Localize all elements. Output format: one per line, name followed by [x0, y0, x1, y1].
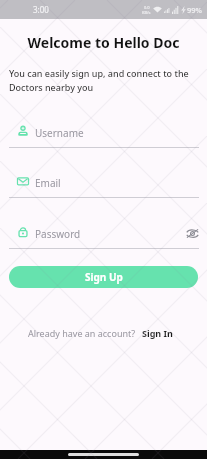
button[interactable]: Sign Up	[9, 266, 198, 288]
staticText: You can easily sign up, and connect to t…	[9, 67, 189, 93]
staticText: 0.0	[144, 5, 150, 10]
staticText: Welcome to Hello Doc	[0, 33, 207, 52]
other: Show password	[186, 228, 199, 239]
button[interactable]: Password	[9, 226, 199, 248]
staticText: Password	[35, 227, 81, 241]
button[interactable]: Username	[9, 125, 199, 147]
staticText: Sign In	[142, 327, 173, 339]
staticText: Username	[35, 126, 84, 140]
staticText: 99%	[187, 5, 202, 15]
staticText: Already have an account?	[28, 327, 136, 339]
staticText: KB/s	[142, 10, 151, 15]
button[interactable]: Sign In	[142, 327, 173, 339]
staticText: Sign Up	[85, 270, 123, 284]
staticText: 3:00	[33, 4, 49, 15]
button[interactable]: Email	[9, 175, 199, 197]
staticText: Email	[35, 176, 61, 190]
